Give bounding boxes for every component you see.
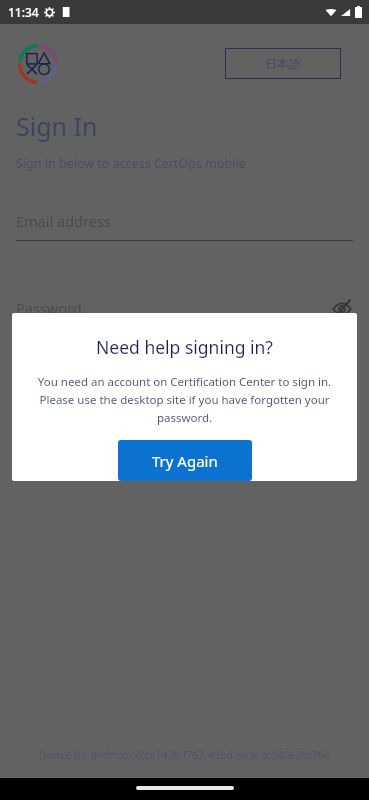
- button[interactable]: Try Again: [118, 440, 252, 481]
- staticText: Sign in below to access CertOps mobile: [16, 155, 246, 172]
- button[interactable]: Show password: [331, 298, 353, 320]
- staticText: Sign In: [16, 109, 98, 143]
- button[interactable]: 日本語: [225, 48, 341, 79]
- staticText: Device ID: android-52ce7438-f767-43bd-9a…: [0, 748, 369, 762]
- button[interactable]: Email address: [16, 211, 353, 241]
- staticText: Try Again: [152, 451, 218, 471]
- staticText: 日本語: [265, 56, 301, 71]
- button[interactable]: Password: [16, 298, 353, 320]
- button[interactable]: App logo: [17, 43, 59, 85]
- staticText: Password: [16, 298, 82, 318]
- staticText: Email address: [16, 211, 111, 231]
- staticText: You need an account on Certification Cen…: [26, 374, 343, 425]
- staticText: 11:34: [8, 4, 39, 20]
- staticText: Need help signing in?: [96, 335, 273, 359]
